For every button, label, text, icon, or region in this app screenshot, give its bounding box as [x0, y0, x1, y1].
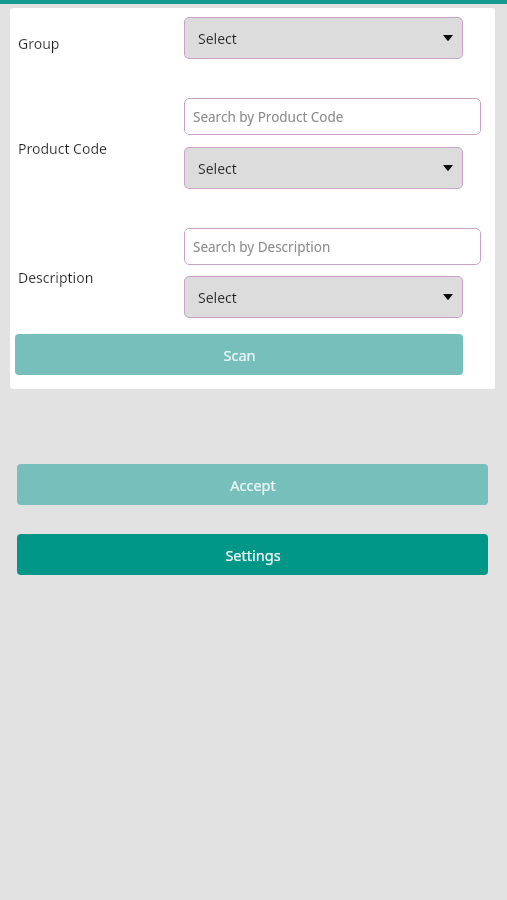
button[interactable]: Select dropdown — [184, 17, 463, 59]
staticText: Accept — [230, 475, 276, 495]
staticText: Product Code — [18, 139, 107, 158]
staticText: Search by Description — [193, 238, 331, 256]
button[interactable]: Select dropdown — [184, 147, 463, 189]
button[interactable]: Scan — [15, 334, 463, 375]
staticText: Search by Product Code — [193, 108, 344, 126]
staticText: Group — [18, 34, 60, 53]
button[interactable]: Settings — [17, 534, 488, 575]
staticText: Select — [198, 159, 237, 178]
button[interactable]: Accept — [17, 464, 488, 505]
staticText: Select — [198, 288, 237, 307]
button[interactable]: Search by Product Code — [184, 98, 481, 135]
staticText: Scan — [223, 345, 256, 365]
staticText: Description — [18, 268, 94, 287]
button[interactable]: Search by Description — [184, 228, 481, 265]
button[interactable]: Select dropdown — [184, 276, 463, 318]
staticText: Settings — [225, 545, 281, 565]
staticText: Select — [198, 29, 237, 48]
